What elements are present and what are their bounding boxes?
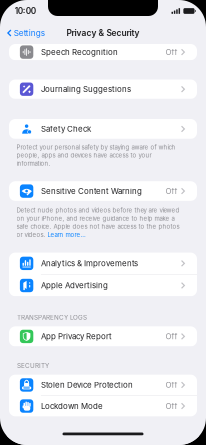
staticText: SECURITY	[17, 362, 49, 369]
button[interactable]: Apple Advertising	[9, 275, 197, 296]
staticText: Lockdown Mode	[41, 401, 103, 411]
staticText: Analytics & Improvements	[41, 259, 138, 268]
staticText: Off	[165, 380, 177, 390]
staticText: Detect nude photos and videos before the…	[17, 207, 180, 238]
staticText: Settings	[14, 28, 45, 38]
staticText: Privacy & Security	[66, 28, 139, 38]
staticText: Journaling Suggestions	[41, 84, 131, 94]
staticText: Off	[165, 47, 177, 57]
button[interactable]: App Privacy Report	[9, 326, 197, 346]
staticText: Off	[165, 401, 177, 411]
button[interactable]: Settings	[0, 26, 45, 40]
button[interactable]: Safety Check	[9, 119, 197, 139]
button[interactable]: Journaling Suggestions	[9, 79, 197, 99]
staticText: Sensitive Content Warning	[41, 186, 142, 196]
staticText: Apple Advertising	[41, 281, 108, 290]
staticText: Safety Check	[41, 124, 91, 134]
button[interactable]: Analytics & Improvements	[9, 253, 197, 274]
staticText: Off	[165, 186, 177, 196]
staticText: Off	[165, 332, 177, 341]
staticText: Speech Recognition	[41, 47, 118, 57]
staticText: 10:00	[15, 6, 36, 16]
button[interactable]: Lockdown Mode	[9, 396, 197, 416]
staticText: TRANSPARENCY LOGS	[17, 314, 87, 321]
staticText: Protect your personal safety by staying …	[17, 143, 176, 167]
button[interactable]: Speech Recognition	[9, 44, 197, 60]
button[interactable]: Sensitive Content Warning	[9, 181, 197, 201]
button[interactable]: Stolen Device Protection	[9, 375, 197, 395]
staticText: Stolen Device Protection	[41, 380, 133, 390]
staticText: App Privacy Report	[41, 332, 112, 341]
